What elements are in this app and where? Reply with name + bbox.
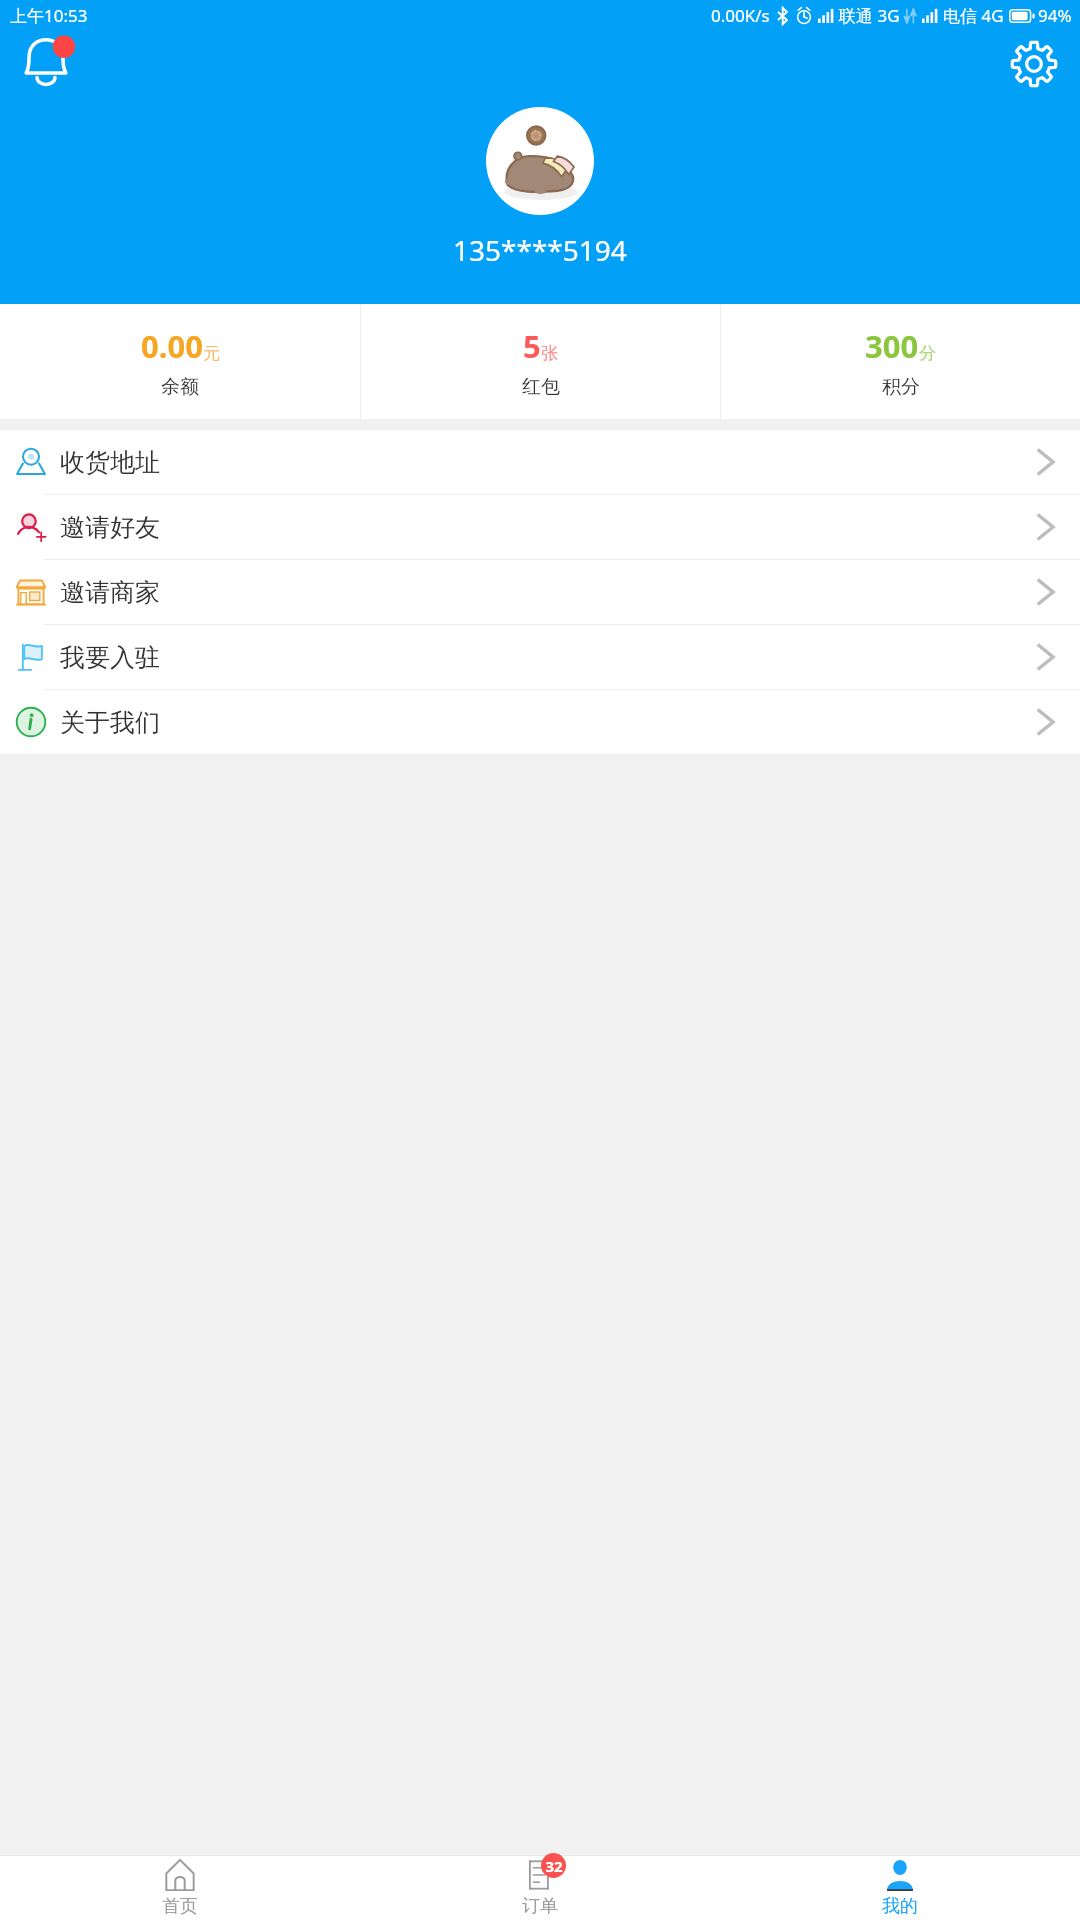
button[interactable]: 邀请商家 — [0, 560, 1080, 624]
staticText: 我的 — [882, 1895, 918, 1918]
staticText: 5 — [523, 325, 541, 367]
staticText: 0.00K/s — [711, 4, 770, 27]
button[interactable]: 32 — [360, 1855, 720, 1920]
button[interactable]: 我要入驻 — [0, 625, 1080, 689]
staticText: 上午10:53 — [10, 4, 88, 27]
button[interactable]: 5 — [361, 304, 720, 419]
button[interactable]: Settings — [1002, 32, 1066, 96]
staticText: 我要入驻 — [60, 642, 160, 673]
button[interactable]: 邀请好友 — [0, 495, 1080, 559]
staticText: 电信 4G — [943, 4, 1004, 27]
staticText: 联通 3G — [839, 4, 900, 27]
staticText: 300 — [865, 325, 919, 367]
button[interactable]: Notifications — [14, 32, 78, 96]
button[interactable]: 收货地址 — [0, 430, 1080, 494]
staticText: 邀请商家 — [60, 577, 160, 608]
staticText: 元 — [203, 343, 220, 364]
staticText: 关于我们 — [60, 707, 160, 738]
button[interactable]: Avatar — [486, 107, 594, 215]
staticText: 0.00 — [141, 325, 203, 367]
staticText: 邀请好友 — [60, 512, 160, 543]
staticText: 32 — [545, 1856, 563, 1876]
staticText: 订单 — [522, 1895, 558, 1918]
staticText: 红包 — [522, 375, 560, 399]
staticText: 135****5194 — [453, 231, 627, 269]
button[interactable]: 300 — [721, 304, 1080, 419]
staticText: 收货地址 — [60, 447, 160, 478]
staticText: 张 — [541, 343, 558, 364]
button[interactable]: 首页 — [0, 1855, 360, 1920]
staticText: 94% — [1038, 4, 1072, 27]
staticText: 首页 — [162, 1895, 198, 1918]
staticText: 余额 — [161, 375, 199, 399]
button[interactable]: 我的 — [720, 1855, 1080, 1920]
staticText: 积分 — [882, 375, 920, 399]
button[interactable]: 关于我们 — [0, 690, 1080, 754]
button[interactable]: 0.00 — [0, 304, 360, 419]
staticText: 分 — [919, 343, 936, 364]
